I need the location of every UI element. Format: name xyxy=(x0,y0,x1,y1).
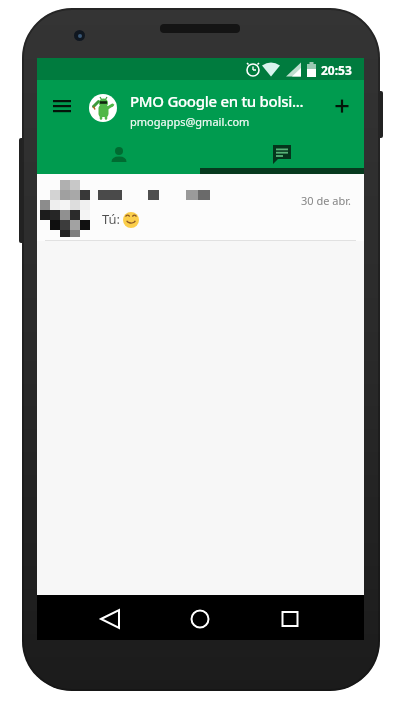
button[interactable] xyxy=(272,601,308,637)
staticText: pmogapps@gmail.com xyxy=(130,114,250,129)
staticText: 20:53 xyxy=(321,62,352,78)
staticText: Tú: xyxy=(102,210,121,228)
button[interactable] xyxy=(327,91,357,121)
button[interactable] xyxy=(92,601,128,637)
staticText: 30 de abr. xyxy=(301,193,351,208)
button[interactable] xyxy=(37,140,200,174)
button[interactable] xyxy=(200,140,364,174)
staticText: PMO Google en tu bolsi... xyxy=(130,91,304,111)
button[interactable] xyxy=(182,601,218,637)
button[interactable] xyxy=(89,94,117,122)
button[interactable]: Tú: xyxy=(37,174,364,241)
button[interactable] xyxy=(47,92,77,122)
